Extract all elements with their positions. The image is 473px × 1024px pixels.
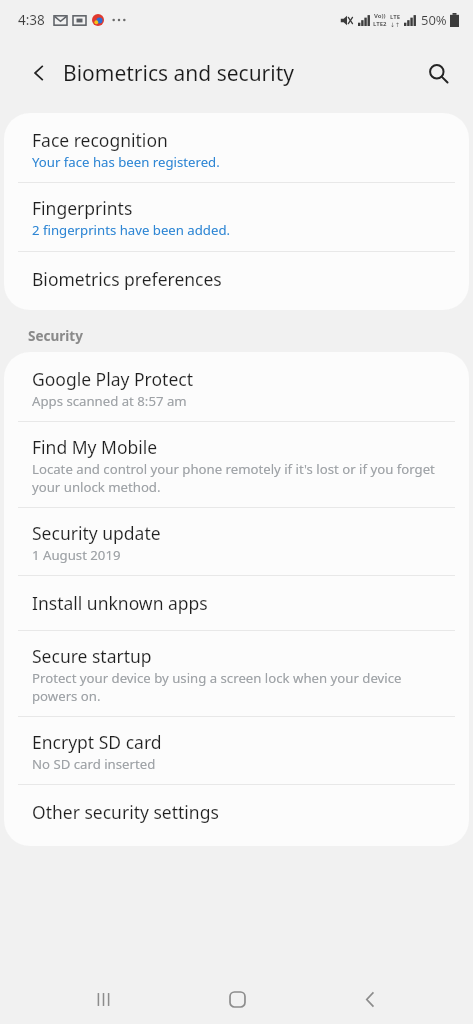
staticText: Apps scanned at 8:57 am [32, 392, 187, 410]
staticText: No SD card inserted [32, 755, 156, 773]
staticText: Protect your device by using a screen lo… [32, 669, 439, 705]
staticText: Biometrics and security [63, 59, 294, 88]
staticText: Security [28, 327, 83, 345]
staticText: Security update [32, 521, 161, 545]
staticText: 1 August 2019 [32, 546, 121, 564]
staticText: LTE2 [373, 20, 387, 28]
staticText: 50% [421, 11, 447, 29]
button[interactable]: Secure startup [4, 631, 469, 717]
staticText: LTE [390, 13, 401, 21]
staticText: Locate and control your phone remotely i… [32, 460, 439, 496]
staticText: 4:38 [18, 11, 45, 29]
staticText: Other security settings [32, 800, 219, 824]
staticText: Google Play Protect [32, 367, 193, 391]
staticText: 2 fingerprints have been added. [32, 221, 231, 239]
button[interactable]: Other security settings [4, 785, 469, 846]
button[interactable]: Back [340, 975, 400, 1024]
button[interactable]: Recent apps [73, 975, 133, 1024]
staticText: Vo)) [374, 12, 386, 20]
staticText: Your face has been registered. [32, 153, 220, 171]
staticText: Find My Mobile [32, 435, 158, 459]
button[interactable]: Security update [4, 508, 469, 576]
button[interactable]: Face recognition [4, 116, 469, 183]
button[interactable]: Back [18, 52, 60, 94]
button[interactable]: Home [207, 975, 267, 1024]
button[interactable]: Biometrics preferences [4, 252, 469, 306]
button[interactable]: Encrypt SD card [4, 717, 469, 785]
button[interactable]: Fingerprints [4, 183, 469, 252]
staticText: ↓↑ [390, 21, 401, 28]
staticText: Face recognition [32, 128, 168, 152]
button[interactable]: Search [417, 52, 459, 94]
button[interactable]: Find My Mobile [4, 422, 469, 508]
staticText: Biometrics preferences [32, 267, 222, 291]
staticText: Secure startup [32, 644, 152, 668]
staticText: Fingerprints [32, 196, 133, 220]
staticText: Install unknown apps [32, 591, 208, 615]
button[interactable]: Google Play Protect [4, 355, 469, 422]
staticText: Encrypt SD card [32, 730, 162, 754]
button[interactable]: Install unknown apps [4, 576, 469, 631]
